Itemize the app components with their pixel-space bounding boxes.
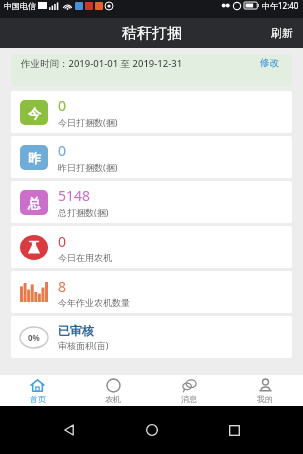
staticText: 消息 <box>181 394 197 404</box>
button[interactable]: 刷新 <box>261 20 303 46</box>
staticText: 已审核 <box>58 323 94 338</box>
button[interactable]: Home <box>139 417 165 443</box>
staticText: 农机 <box>105 394 121 404</box>
staticText: 8 <box>58 277 67 296</box>
staticText: 总打捆数(捆) <box>58 206 109 218</box>
other: 首页 <box>30 378 45 393</box>
other: 我的 <box>258 378 273 393</box>
button[interactable]: 修改 <box>257 54 282 72</box>
staticText: 0 <box>58 96 67 115</box>
button[interactable]: 总 <box>11 181 292 223</box>
staticText: 首页 <box>30 394 46 404</box>
button[interactable]: 昨 <box>11 136 292 178</box>
other: 消息 <box>182 378 197 393</box>
other: 农机 <box>106 378 121 393</box>
staticText: 总 <box>28 195 41 211</box>
staticText: 5148 <box>58 186 91 205</box>
button[interactable]: 我的 <box>227 375 303 406</box>
staticText: 今年作业农机数量 <box>58 297 130 308</box>
staticText: 中国电信 <box>4 1 36 11</box>
staticText: 审核面积(亩) <box>58 339 109 351</box>
staticText: 0% <box>28 332 40 343</box>
button[interactable]: 8 <box>11 271 292 313</box>
staticText: 我的 <box>257 394 273 404</box>
staticText: 今日在用农机 <box>58 252 112 263</box>
staticText: 今 <box>28 105 41 121</box>
button[interactable]: 首页 <box>0 375 75 406</box>
staticText: 0 <box>58 141 67 160</box>
button[interactable]: 今 <box>11 91 292 133</box>
staticText: 0 <box>58 232 67 251</box>
staticText: 秸秆打捆 <box>122 24 182 43</box>
button[interactable]: 0 <box>11 226 292 268</box>
staticText: 刷新 <box>271 26 293 40</box>
staticText: 今日打捆数(捆) <box>58 116 118 128</box>
button[interactable]: 消息 <box>151 375 227 406</box>
button[interactable]: Back <box>56 417 82 443</box>
button[interactable]: 农机 <box>75 375 151 406</box>
staticText: 修改 <box>260 57 279 69</box>
staticText: 昨 <box>28 150 41 166</box>
staticText: 中午12:40 <box>262 0 299 11</box>
button[interactable]: Recents <box>221 417 247 443</box>
staticText: 作业时间：2019-01-01 至 2019-12-31 <box>21 57 183 70</box>
staticText: 昨日打捆数(捆) <box>58 161 118 173</box>
button[interactable]: 0% <box>11 316 292 358</box>
